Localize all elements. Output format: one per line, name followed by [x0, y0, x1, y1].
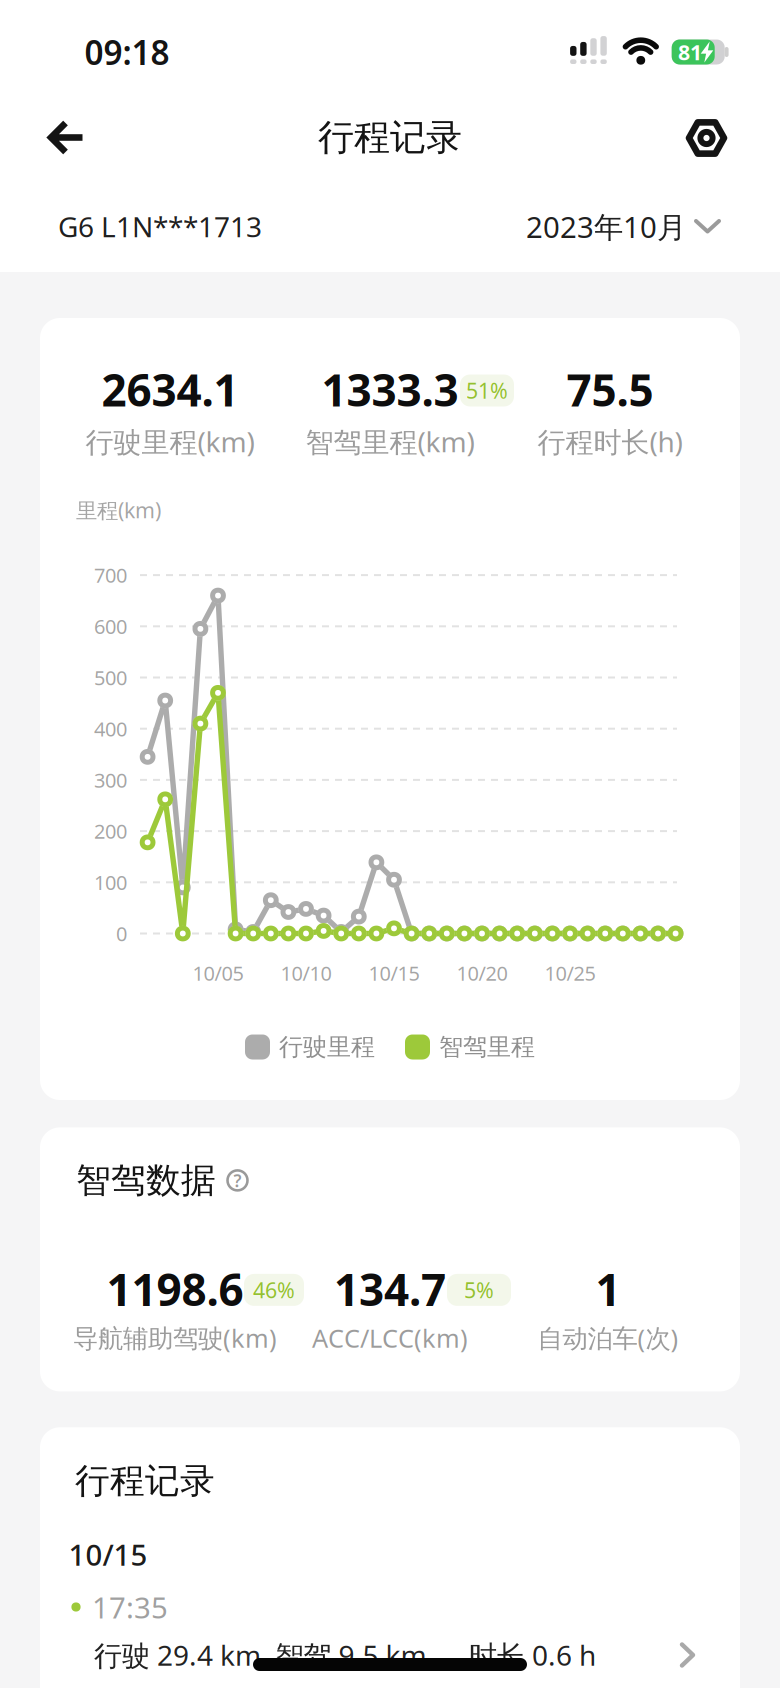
staticText: 2634.1 — [101, 360, 238, 419]
staticText: G6 L1N***1713 — [58, 208, 262, 245]
button[interactable]: Settings — [680, 114, 732, 162]
button[interactable]: 智驾数据说明 — [226, 1169, 249, 1192]
staticText: ACC/LCC(km) — [312, 1321, 468, 1355]
staticText: 1198.6 — [106, 1260, 243, 1318]
staticText: 智驾 9.5 km — [275, 1636, 426, 1674]
staticText: 81 — [678, 38, 702, 66]
staticText: 200 — [94, 818, 127, 844]
staticText: 自动泊车(次) — [537, 1321, 678, 1355]
staticText: 5% — [464, 1276, 494, 1304]
staticText: 智驾里程 — [439, 1032, 535, 1062]
staticText: 75.5 — [566, 360, 653, 419]
staticText: 行驶里程 — [279, 1032, 375, 1062]
staticText: 10/05 — [192, 960, 243, 986]
staticText: 智驾里程(km) — [305, 423, 474, 460]
staticText: 10/15 — [368, 960, 419, 986]
button[interactable]: 行驶 29.4 km — [40, 1629, 740, 1681]
staticText: 51% — [466, 376, 508, 405]
staticText: 46% — [253, 1276, 295, 1304]
staticText: 行程记录 — [318, 115, 462, 160]
staticText: 导航辅助驾驶(km) — [73, 1321, 277, 1355]
staticText: 400 — [94, 715, 127, 742]
button[interactable]: Back — [27, 115, 103, 159]
staticText: 行驶 29.4 km — [94, 1636, 261, 1674]
staticText: 300 — [94, 767, 127, 793]
staticText: 100 — [94, 869, 127, 896]
staticText: 智驾数据 — [76, 1159, 216, 1202]
staticText: ? — [233, 1169, 241, 1192]
staticText: 0 — [116, 920, 127, 947]
staticText: 行程记录 — [75, 1460, 215, 1502]
staticText: 行驶里程(km) — [85, 423, 254, 460]
staticText: 17:35 — [92, 1587, 168, 1626]
staticText: 1 — [595, 1260, 620, 1318]
staticText: 10/10 — [280, 960, 331, 986]
staticText: 10/25 — [544, 960, 595, 986]
staticText: 10/15 — [68, 1535, 147, 1574]
staticText: 09:18 — [84, 30, 169, 74]
staticText: 700 — [94, 562, 127, 588]
staticText: 10/20 — [456, 960, 507, 986]
staticText: 里程(km) — [76, 496, 161, 524]
button[interactable]: 2023年10月 — [526, 207, 720, 246]
staticText: 134.7 — [334, 1260, 446, 1318]
staticText: 1333.3 — [321, 360, 458, 419]
staticText: 时长 0.6 h — [469, 1636, 596, 1674]
staticText: 500 — [94, 664, 127, 691]
staticText: 行程时长(h) — [537, 423, 682, 460]
staticText: 2023年10月 — [526, 207, 686, 246]
staticText: 600 — [94, 613, 127, 640]
